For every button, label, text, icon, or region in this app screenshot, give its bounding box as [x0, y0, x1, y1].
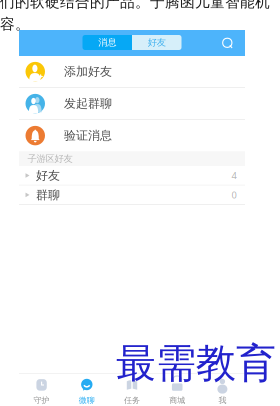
button[interactable]: 商城 — [155, 373, 200, 406]
staticText: 守护 — [34, 395, 50, 405]
staticText: 最需教育 — [116, 339, 276, 388]
staticText: 们的软硬结合的产品。于腾函儿童智能机 — [0, 0, 270, 11]
button[interactable]: 验证消息 — [19, 120, 245, 151]
staticText: 我 — [218, 395, 226, 405]
staticText: 容。 — [0, 15, 30, 33]
button[interactable]: 好友 — [132, 35, 181, 50]
staticText: 群聊 — [36, 187, 60, 202]
button[interactable]: 我 — [200, 373, 245, 406]
staticText: 验证消息 — [64, 128, 112, 143]
button[interactable]: 发起群聊 — [19, 88, 245, 119]
staticText: 发起群聊 — [64, 96, 112, 111]
button[interactable]: 微聊 — [64, 373, 109, 406]
staticText: 微聊 — [79, 395, 95, 405]
button[interactable]: Search — [221, 35, 245, 50]
staticText: 商城 — [169, 395, 185, 405]
staticText: 好友 — [36, 168, 60, 183]
staticText: 4 — [232, 169, 237, 182]
staticText: 添加好友 — [64, 64, 112, 79]
staticText: 任务 — [124, 395, 140, 405]
button[interactable]: 好友 — [19, 166, 245, 185]
button[interactable]: 守护 — [19, 373, 64, 406]
staticText: 消息 — [98, 37, 116, 48]
staticText: 好友 — [148, 37, 166, 48]
staticText: 0 — [232, 189, 237, 201]
button[interactable]: 消息 — [82, 35, 132, 50]
button[interactable]: 群聊 — [19, 186, 245, 204]
button[interactable]: 任务 — [109, 373, 155, 406]
staticText: 子游区好友 — [27, 153, 72, 164]
button[interactable]: 添加好友 — [19, 56, 245, 87]
